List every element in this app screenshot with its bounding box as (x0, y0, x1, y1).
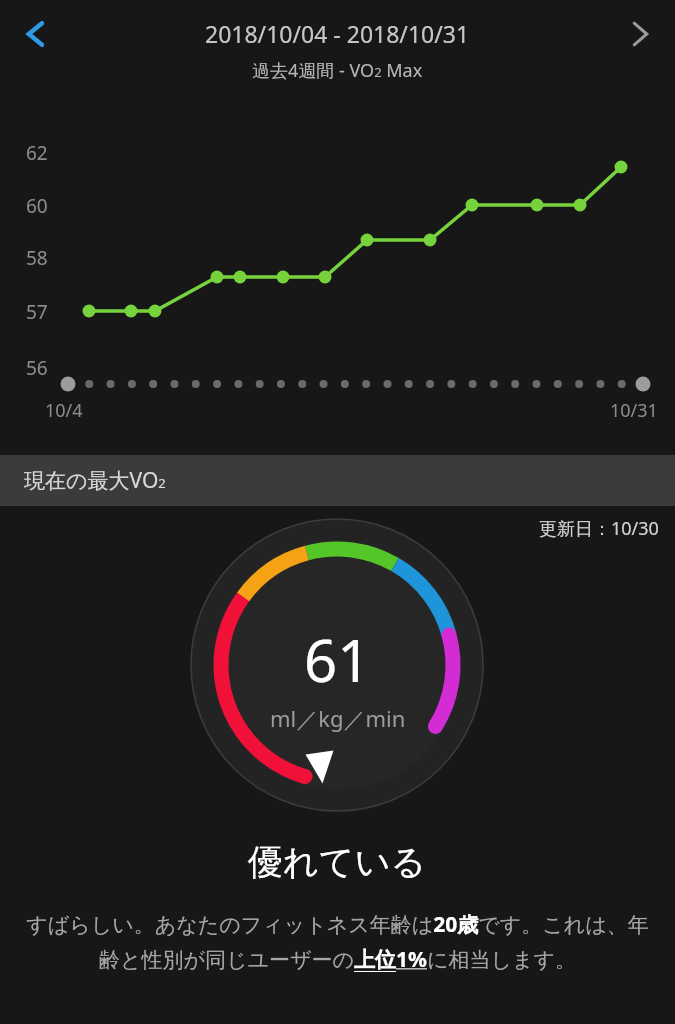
button[interactable]: Next period (611, 6, 667, 62)
staticText: 56 (26, 355, 48, 381)
staticText: 優れている (248, 840, 427, 884)
button[interactable]: 現在の最大VO2 (0, 455, 675, 506)
staticText: 57 (26, 299, 48, 325)
staticText: ml／kg／min (270, 703, 406, 733)
staticText: 現在の最大VO2 (24, 466, 166, 495)
staticText: 60 (26, 193, 48, 219)
staticText: 62 (26, 140, 48, 166)
staticText: 更新日：10/30 (539, 516, 659, 541)
staticText: 58 (26, 245, 48, 271)
staticText: 過去4週間 - VO2 Max (252, 58, 423, 83)
staticText: 61 (304, 620, 371, 699)
staticText: 10/31 (610, 398, 658, 423)
staticText: すばらしい。あなたのフィットネス年齢は20歳です。これは、年齢と性別が同じユーザ… (16, 910, 659, 973)
button[interactable]: Previous period (8, 6, 64, 62)
staticText: 10/4 (45, 398, 83, 423)
staticText: 2018/10/04 - 2018/10/31 (205, 18, 470, 49)
